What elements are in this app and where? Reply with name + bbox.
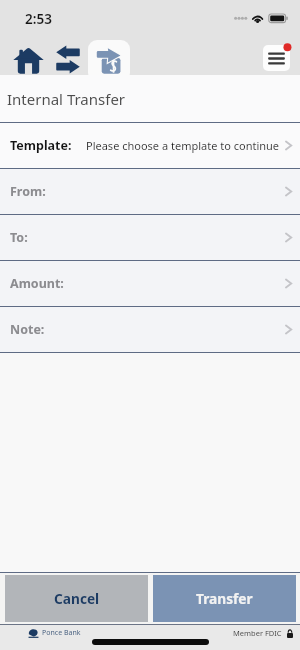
staticText: Ponce Bank bbox=[42, 628, 81, 638]
staticText: Please choose a template to continue bbox=[86, 138, 280, 153]
button[interactable]: Home bbox=[6, 38, 50, 82]
staticText: Member FDIC bbox=[233, 628, 282, 638]
button[interactable]: Template: bbox=[0, 123, 300, 168]
staticText: Internal Transfer bbox=[7, 89, 126, 109]
button[interactable]: Transfers bbox=[46, 37, 90, 81]
staticText: Template: bbox=[10, 137, 72, 154]
staticText: Note: bbox=[10, 321, 45, 338]
button[interactable]: Transfer bbox=[153, 575, 296, 622]
staticText: 2:53 bbox=[25, 10, 52, 28]
button[interactable]: Note: bbox=[0, 307, 300, 352]
button[interactable]: Menu bbox=[258, 38, 296, 76]
staticText: Transfer bbox=[196, 589, 253, 608]
button[interactable]: Internal Transfer bbox=[88, 40, 130, 82]
staticText: Cancel bbox=[54, 589, 100, 608]
button[interactable]: From: bbox=[0, 169, 300, 214]
button[interactable]: Amount: bbox=[0, 261, 300, 306]
staticText: Amount: bbox=[10, 275, 64, 292]
staticText: To: bbox=[10, 229, 28, 246]
button[interactable]: Cancel bbox=[5, 575, 148, 622]
staticText: From: bbox=[10, 183, 46, 200]
button[interactable]: To: bbox=[0, 215, 300, 260]
